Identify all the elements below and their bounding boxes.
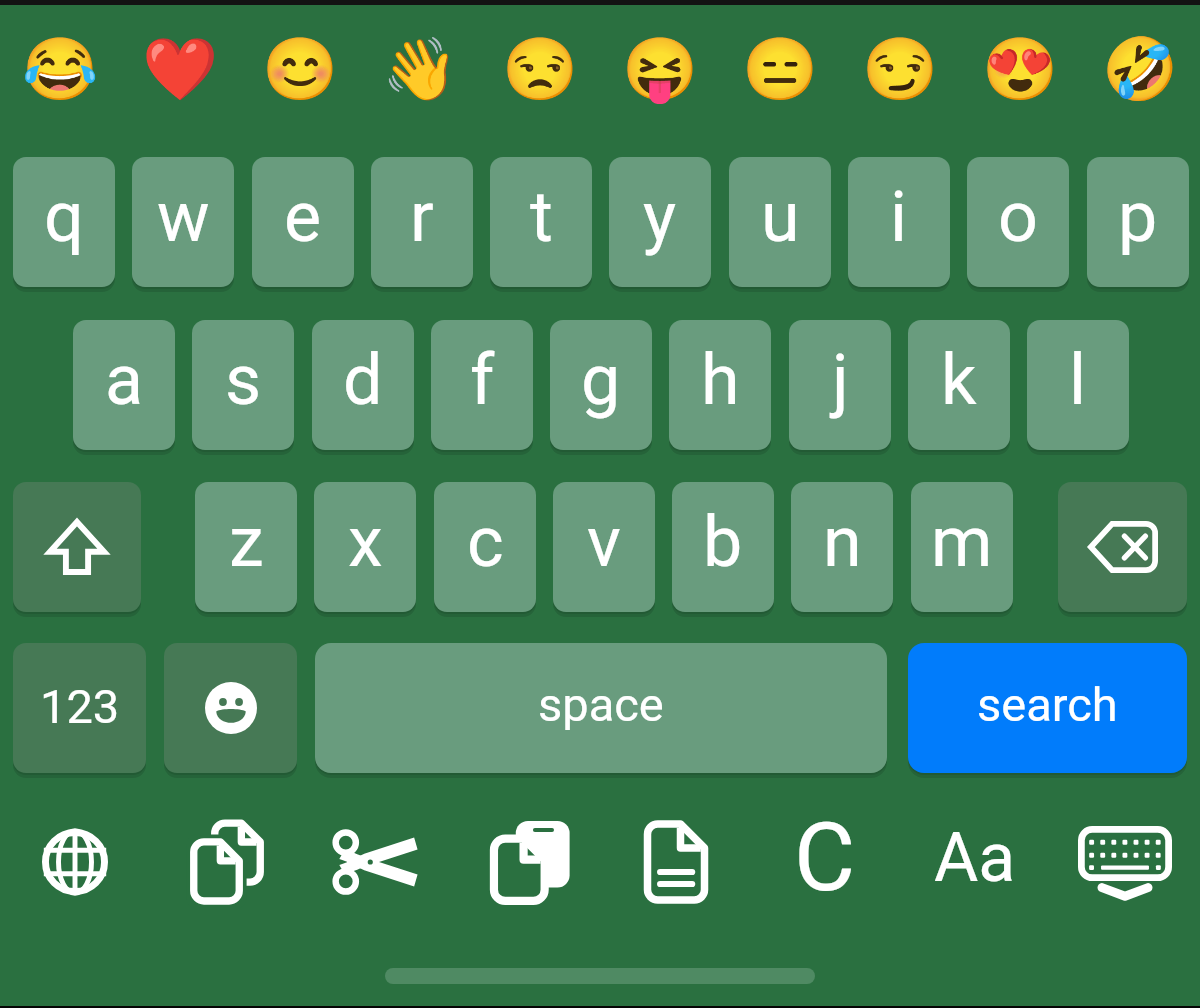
button[interactable]: m <box>911 482 1013 612</box>
button[interactable]: 123 <box>13 643 146 773</box>
staticText: t <box>530 176 553 258</box>
button[interactable]: Shift <box>13 482 141 612</box>
staticText: 😊 <box>262 33 339 105</box>
button[interactable]: 👋 <box>360 2 480 136</box>
staticText: 123 <box>40 679 120 734</box>
button[interactable]: r <box>371 157 473 287</box>
button[interactable]: u <box>729 157 831 287</box>
button[interactable]: ❤️ <box>120 2 240 136</box>
button[interactable]: h <box>669 320 771 450</box>
staticText: l <box>1069 339 1087 421</box>
staticText: 😑 <box>742 33 819 105</box>
button[interactable]: Backspace <box>1058 482 1187 612</box>
button[interactable]: Clipboard <box>750 797 900 927</box>
staticText: 😒 <box>502 33 579 105</box>
staticText: b <box>703 501 743 583</box>
button[interactable]: 😏 <box>840 2 960 136</box>
button[interactable]: search <box>908 643 1187 773</box>
staticText: u <box>761 176 800 258</box>
staticText: 😍 <box>982 33 1059 105</box>
button[interactable]: Text formatting <box>900 797 1050 927</box>
button[interactable]: 😂 <box>0 2 120 136</box>
button[interactable]: s <box>192 320 294 450</box>
button[interactable]: 😍 <box>960 2 1080 136</box>
button[interactable]: n <box>791 482 893 612</box>
button[interactable]: l <box>1027 320 1129 450</box>
staticText: space <box>538 677 664 732</box>
button[interactable]: 🤣 <box>1080 2 1200 136</box>
button[interactable]: 😑 <box>720 2 840 136</box>
staticText: 🤣 <box>1102 33 1179 105</box>
button[interactable]: x <box>314 482 416 612</box>
staticText: a <box>105 339 144 421</box>
staticText: s <box>225 339 262 421</box>
button[interactable]: q <box>13 157 115 287</box>
button[interactable]: Emoji keyboard <box>164 643 297 773</box>
staticText: 😏 <box>862 33 939 105</box>
button[interactable]: 😊 <box>240 2 360 136</box>
button[interactable]: e <box>252 157 354 287</box>
staticText: j <box>832 339 849 421</box>
staticText: p <box>1118 176 1158 258</box>
staticText: 😂 <box>22 33 99 105</box>
button[interactable]: i <box>848 157 950 287</box>
button[interactable]: Notes <box>600 797 750 927</box>
staticText: C <box>794 803 856 913</box>
staticText: 👋 <box>382 33 459 105</box>
staticText: v <box>587 501 621 583</box>
staticText: z <box>229 501 264 583</box>
button[interactable]: b <box>672 482 774 612</box>
staticText: q <box>44 176 84 258</box>
staticText: w <box>157 176 210 258</box>
button[interactable]: j <box>789 320 891 450</box>
button[interactable]: v <box>553 482 655 612</box>
staticText: h <box>701 339 740 421</box>
button[interactable]: Hide keyboard <box>1050 797 1200 927</box>
staticText: f <box>470 339 495 421</box>
button[interactable]: Cut <box>300 797 450 927</box>
button[interactable]: z <box>195 482 297 612</box>
staticText: x <box>348 501 383 583</box>
staticText: k <box>941 339 977 421</box>
button[interactable]: 😝 <box>600 2 720 136</box>
button[interactable]: a <box>73 320 175 450</box>
staticText: Aa <box>934 818 1016 898</box>
staticText: c <box>467 501 504 583</box>
staticText: 😝 <box>622 33 699 105</box>
button[interactable]: space <box>315 643 887 773</box>
button[interactable]: t <box>490 157 592 287</box>
staticText: e <box>284 176 322 258</box>
button[interactable]: Paste <box>450 797 600 927</box>
staticText: search <box>977 677 1118 732</box>
staticText: g <box>581 339 621 421</box>
button[interactable]: y <box>609 157 711 287</box>
staticText: m <box>931 501 993 583</box>
staticText: n <box>823 501 862 583</box>
button[interactable]: w <box>132 157 234 287</box>
button[interactable]: o <box>967 157 1069 287</box>
staticText: i <box>890 176 908 258</box>
button[interactable]: Change language <box>0 797 150 927</box>
button[interactable]: Copy <box>150 797 300 927</box>
staticText: r <box>410 176 434 258</box>
button[interactable]: k <box>908 320 1010 450</box>
button[interactable]: c <box>434 482 536 612</box>
button[interactable]: f <box>431 320 533 450</box>
staticText: o <box>998 176 1038 258</box>
staticText: y <box>643 176 677 258</box>
button[interactable]: d <box>312 320 414 450</box>
button[interactable]: g <box>550 320 652 450</box>
staticText: d <box>343 339 383 421</box>
button[interactable]: p <box>1087 157 1189 287</box>
staticText: ❤️ <box>142 33 219 105</box>
button[interactable]: 😒 <box>480 2 600 136</box>
